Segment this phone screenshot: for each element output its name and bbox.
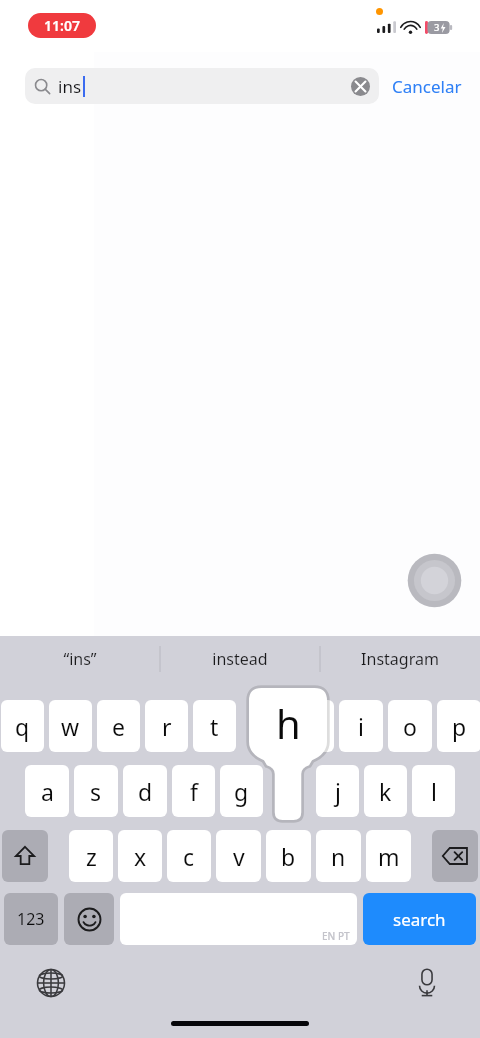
staticText: z <box>86 841 97 872</box>
button[interactable]: f <box>172 765 215 817</box>
staticText: d <box>138 776 153 807</box>
button[interactable]: l <box>412 765 455 817</box>
staticText: a <box>41 776 54 807</box>
button[interactable]: Shift <box>2 830 48 882</box>
staticText: q <box>15 711 30 742</box>
button[interactable]: 11:07 <box>28 13 96 38</box>
button[interactable]: z <box>69 830 113 882</box>
staticText: o <box>403 711 417 742</box>
button[interactable]: 123 <box>4 893 58 945</box>
button[interactable]: b <box>266 830 311 882</box>
button[interactable]: Switch keyboard language <box>32 964 70 1002</box>
staticText: l <box>431 776 437 807</box>
staticText: 11:07 <box>44 16 80 35</box>
staticText: b <box>281 841 296 872</box>
staticText: t <box>210 711 219 742</box>
button[interactable]: w <box>49 700 92 752</box>
staticText: k <box>379 776 392 807</box>
staticText: j <box>335 776 341 807</box>
button[interactable]: c <box>167 830 211 882</box>
button[interactable]: p <box>437 700 480 752</box>
button[interactable]: “ins” <box>0 636 160 682</box>
staticText: r <box>162 711 172 742</box>
staticText: i <box>358 711 364 742</box>
staticText: e <box>112 711 125 742</box>
button[interactable]: Emoji <box>64 893 114 945</box>
staticText: f <box>190 776 198 807</box>
button[interactable] <box>268 765 311 817</box>
staticText: x <box>134 841 147 872</box>
button[interactable]: Backspace <box>432 830 478 882</box>
staticText: m <box>378 841 400 872</box>
button[interactable]: search <box>363 893 476 945</box>
staticText: p <box>452 711 467 742</box>
button[interactable]: t <box>193 700 236 752</box>
button[interactable]: Instagram <box>320 636 480 682</box>
button[interactable]: e <box>97 700 140 752</box>
button[interactable]: Cancelar <box>379 68 462 104</box>
staticText: instead <box>212 648 268 670</box>
button[interactable]: n <box>316 830 361 882</box>
staticText: w <box>61 711 80 742</box>
staticText: Cancelar <box>392 75 462 98</box>
button[interactable]: Dictate <box>408 964 446 1002</box>
staticText: g <box>234 776 249 807</box>
button[interactable]: j <box>316 765 359 817</box>
staticText: search <box>393 908 446 931</box>
staticText: Instagram <box>361 648 439 670</box>
button[interactable]: i <box>339 700 383 752</box>
button[interactable]: Space <box>120 893 357 945</box>
staticText: c <box>183 841 195 872</box>
staticText: v <box>233 841 245 872</box>
staticText: EN PT <box>322 929 350 943</box>
button[interactable]: o <box>388 700 432 752</box>
button[interactable]: instead <box>160 636 320 682</box>
button[interactable]: u <box>290 700 334 752</box>
button[interactable]: a <box>25 765 69 817</box>
button[interactable]: k <box>364 765 407 817</box>
button[interactable]: g <box>220 765 263 817</box>
button[interactable]: r <box>145 700 188 752</box>
button[interactable]: q <box>1 700 44 752</box>
button[interactable]: Clear text <box>351 77 370 96</box>
button[interactable]: d <box>123 765 167 817</box>
button[interactable]: x <box>118 830 162 882</box>
staticText: s <box>90 776 102 807</box>
staticText: h <box>276 696 301 750</box>
staticText: 3 <box>434 21 440 34</box>
button[interactable]: AssistiveTouch <box>406 552 463 609</box>
staticText: “ins” <box>63 648 97 670</box>
button[interactable]: s <box>74 765 118 817</box>
button[interactable]: m <box>366 830 411 882</box>
staticText: ins <box>58 75 82 98</box>
button[interactable] <box>241 700 285 752</box>
staticText: 123 <box>17 908 45 930</box>
staticText: n <box>331 841 346 872</box>
button[interactable]: ins <box>25 68 379 104</box>
button[interactable]: v <box>216 830 261 882</box>
